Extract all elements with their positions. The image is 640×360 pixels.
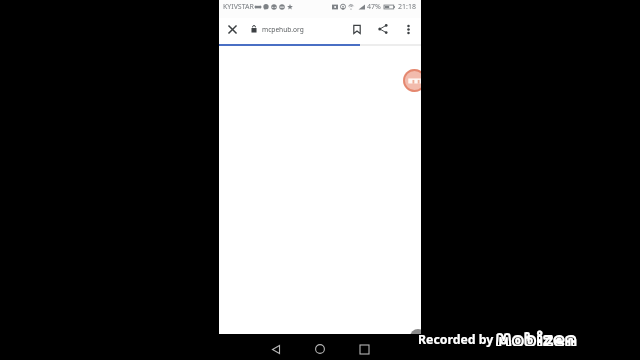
button[interactable]: Recorder controls xyxy=(410,329,421,345)
button[interactable]: Mobizen recorder xyxy=(403,69,421,92)
staticText: KYIVSTAR xyxy=(223,2,254,12)
staticText: 21:18 xyxy=(398,2,416,12)
button[interactable]: Close xyxy=(219,16,245,42)
button[interactable]: Home xyxy=(307,336,333,360)
button[interactable]: More options xyxy=(396,17,420,41)
button[interactable]: Bookmark xyxy=(345,17,369,41)
staticText: Recorded by xyxy=(418,331,494,348)
staticText: mcpehub.org xyxy=(262,25,304,34)
staticText: Mobizen xyxy=(496,326,578,346)
button[interactable]: Recent apps xyxy=(351,336,377,360)
button[interactable]: Back xyxy=(263,336,289,360)
button[interactable]: Share xyxy=(371,17,395,41)
staticText: 47% xyxy=(367,2,381,12)
button[interactable]: Site information, mcpehub.org xyxy=(251,20,351,38)
